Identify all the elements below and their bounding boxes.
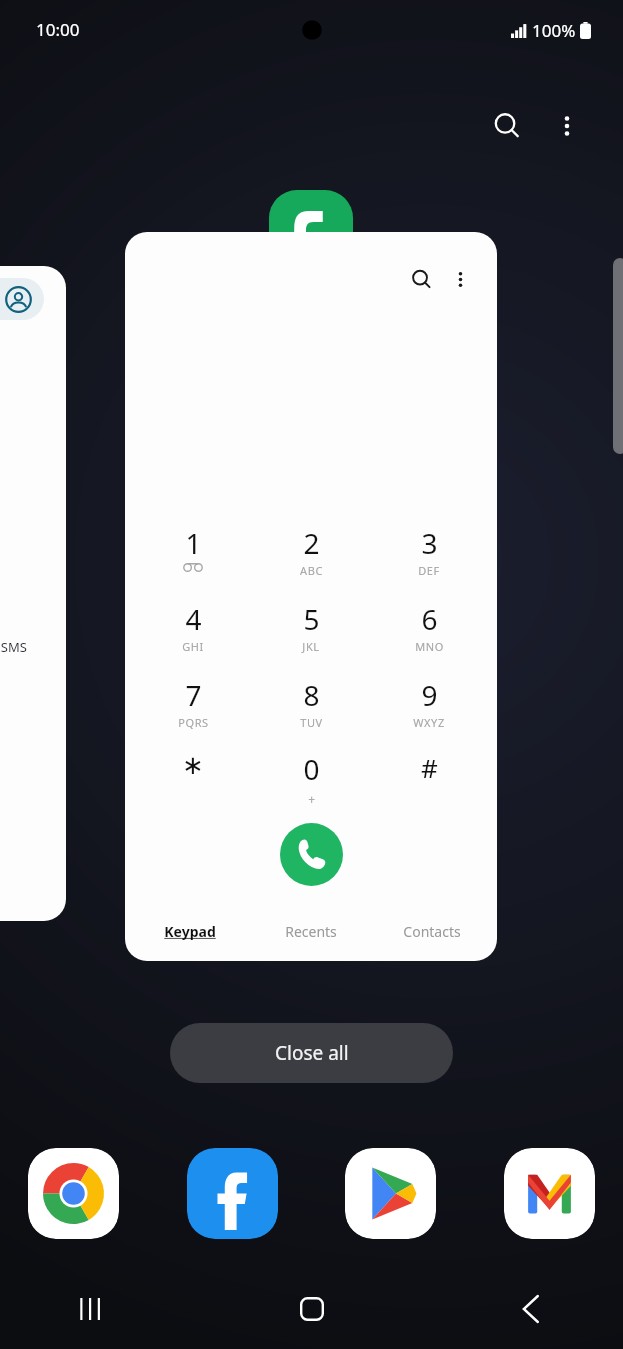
button[interactable]: 1 [143, 524, 243, 586]
staticText: ABC [300, 563, 323, 578]
button[interactable]: 4 [143, 600, 243, 662]
staticText: PQRS [178, 715, 209, 730]
staticText: Recents [285, 922, 337, 941]
button[interactable]: 2 [261, 524, 361, 586]
staticText: MNO [415, 639, 444, 654]
staticText: 1 [185, 524, 202, 562]
staticText: : SMS [0, 638, 27, 656]
button[interactable]: Recents [255, 914, 367, 948]
button[interactable]: ∗ [143, 750, 243, 812]
button[interactable]: More options [545, 104, 589, 148]
staticText: 100% [532, 19, 576, 42]
button[interactable]: Home [280, 1277, 344, 1341]
staticText: WXYZ [413, 715, 445, 730]
button[interactable]: 5 [261, 600, 361, 662]
staticText: TUV [300, 715, 323, 730]
staticText: Keypad [164, 922, 216, 941]
staticText: 8 [303, 676, 320, 714]
button[interactable]: 8 [261, 676, 361, 738]
button[interactable]: Gmail [504, 1148, 595, 1239]
button[interactable]: 7 [143, 676, 243, 738]
button[interactable]: 3 [379, 524, 479, 586]
button[interactable]: Search [483, 102, 531, 150]
button[interactable]: Chrome [28, 1148, 119, 1239]
staticText: GHI [182, 639, 204, 654]
staticText: Contacts [403, 922, 461, 941]
staticText: 3 [421, 524, 438, 562]
staticText: # [421, 750, 438, 785]
button[interactable]: Call [280, 823, 343, 886]
staticText: 4 [185, 600, 202, 638]
staticText: JKL [302, 639, 320, 654]
button[interactable]: : SMS [0, 266, 66, 921]
button[interactable]: Recent apps [60, 1277, 124, 1341]
button[interactable]: Close all [170, 1023, 453, 1083]
staticText: 7 [185, 676, 202, 714]
button[interactable]: # [379, 750, 479, 812]
button[interactable]: Keypad [134, 914, 246, 948]
staticText: 5 [303, 600, 320, 638]
staticText: Close all [275, 1040, 349, 1066]
staticText: 10:00 [36, 18, 80, 41]
staticText: 9 [421, 676, 438, 714]
button[interactable]: Search contacts [402, 260, 440, 298]
staticText: ∗ [182, 750, 204, 780]
staticText: 2 [303, 524, 320, 562]
button[interactable]: Search contacts [125, 232, 497, 961]
staticText: + [308, 791, 316, 807]
button[interactable]: Contacts [376, 914, 488, 948]
button[interactable]: 6 [379, 600, 479, 662]
button[interactable]: Back [499, 1277, 563, 1341]
staticText: DEF [418, 563, 440, 578]
button[interactable]: 0 [261, 750, 361, 812]
button[interactable]: Facebook [187, 1148, 278, 1239]
button[interactable]: Play Store [345, 1148, 436, 1239]
staticText: 6 [421, 600, 438, 638]
staticText: 0 [303, 750, 320, 788]
button[interactable]: Phone app [269, 190, 353, 274]
button[interactable]: Dialer options [441, 260, 479, 298]
button[interactable]: 9 [379, 676, 479, 738]
